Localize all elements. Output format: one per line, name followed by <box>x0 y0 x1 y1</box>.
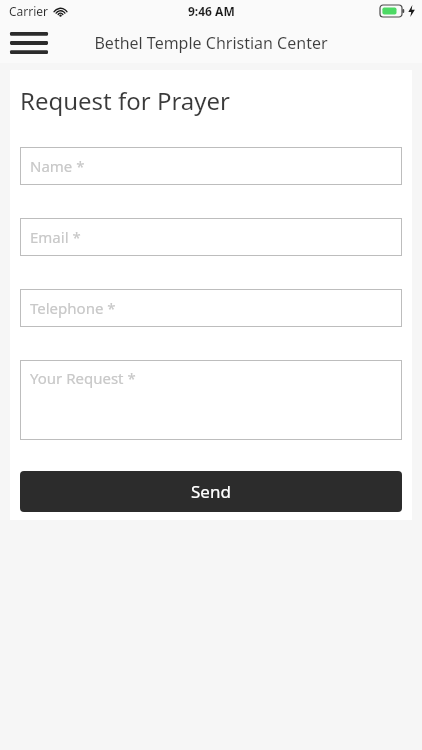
staticText: Carrier <box>9 3 49 19</box>
staticText: 9:46 AM <box>188 3 235 19</box>
button[interactable]: Telephone * <box>20 289 402 327</box>
staticText: Telephone * <box>30 298 116 318</box>
staticText: Name * <box>30 156 85 176</box>
button[interactable]: Send <box>20 471 402 512</box>
button[interactable]: Open menu <box>6 24 52 62</box>
staticText: Bethel Temple Christian Center <box>94 32 328 54</box>
button[interactable]: Name * <box>20 147 402 185</box>
staticText: Your Request * <box>30 368 136 388</box>
staticText: Request for Prayer <box>20 84 231 117</box>
staticText: Send <box>191 480 231 503</box>
button[interactable]: Email * <box>20 218 402 256</box>
staticText: Email * <box>30 227 81 247</box>
button[interactable]: Your Request * <box>20 360 402 440</box>
